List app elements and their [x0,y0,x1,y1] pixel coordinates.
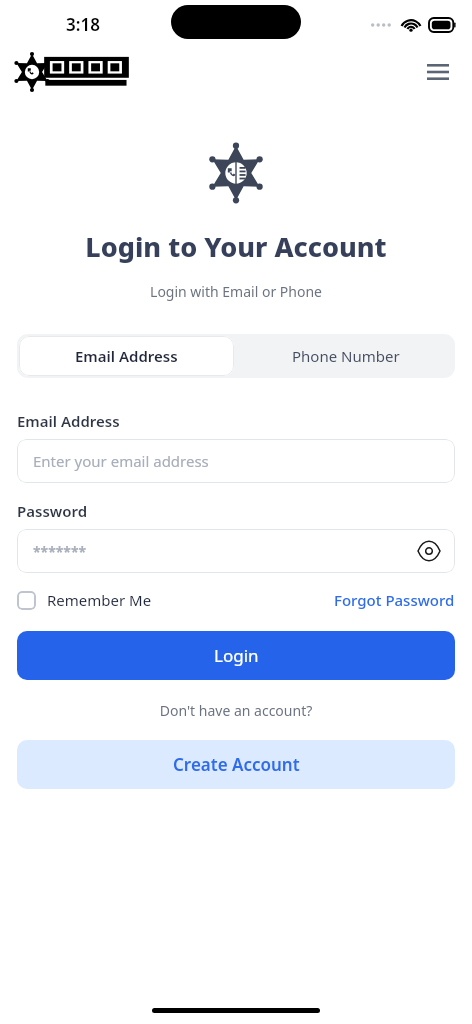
button[interactable]: ******* [17,529,455,573]
staticText: Email Address [75,346,178,366]
staticText: Password [17,501,455,521]
staticText: Create Account [173,753,300,776]
staticText: Login [214,644,259,667]
staticText: Don't have an account? [0,701,472,720]
staticText: Phone Number [292,346,400,366]
button[interactable]: Login [17,631,455,680]
staticText: Login to Your Account [0,228,472,265]
button[interactable]: Forgot Password [334,590,455,610]
staticText: ******* [33,542,87,561]
button[interactable]: Email Address [19,336,234,376]
staticText: Email Address [17,411,455,431]
staticText: Remember Me [47,590,152,610]
button[interactable]: Create Account [17,740,455,789]
button[interactable]: Remember Me [17,590,152,610]
staticText: Enter your email address [33,451,209,471]
staticText: 3:18 [66,13,100,36]
staticText: Forgot Password [334,590,455,610]
button[interactable]: Enter your email address [17,439,455,483]
button[interactable]: Menu [418,52,458,92]
button[interactable]: Show password [415,537,443,565]
staticText: Login with Email or Phone [0,282,472,301]
button[interactable]: Phone Number [236,334,455,378]
